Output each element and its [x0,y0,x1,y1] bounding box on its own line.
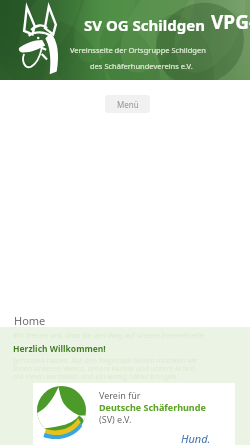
staticText: Hund. [181,431,211,445]
staticText: mit ihnen vorstellen und ein wenig näher… [13,372,178,382]
staticText: Deutsche Schäferhunde [99,401,206,413]
staticText: Home [14,313,46,328]
staticText: Herzlich Willkommen! [13,343,106,355]
staticText: (SV) e.V. [99,413,132,425]
staticText: Menü [117,99,139,110]
staticText: gefunden haben. Auf den folgenden Seiten… [13,356,198,366]
staticText: VPG- [211,9,250,35]
staticText: des Schäferhundevereins e.V. [90,61,193,71]
staticText: Ihnen unseren Verein, unsere Hunde und u… [13,364,196,374]
staticText: Wir freuen uns, dass Sie den Weg auf uns… [13,331,204,341]
staticText: Vereinsseite der Ortsgruppe Schildgen [70,45,206,55]
staticText: SV OG Schildgen [84,15,205,35]
staticText: Verein für [99,389,141,401]
button[interactable]: Menü [105,95,150,113]
